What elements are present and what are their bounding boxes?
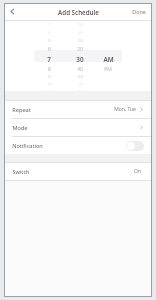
staticText: 40 (77, 66, 83, 73)
staticText: 30 (76, 55, 84, 64)
staticText: 3 (48, 22, 51, 28)
button[interactable]: Done (126, 3, 152, 20)
staticText: Mon, Tue (114, 106, 136, 113)
staticText: On (134, 168, 141, 175)
staticText: Add Schedule (58, 8, 99, 16)
staticText: 10 (78, 38, 83, 44)
staticText: 10 (78, 89, 83, 91)
staticText: 5 (48, 38, 51, 44)
staticText: 8 (48, 66, 51, 73)
staticText: 10 (47, 82, 52, 88)
staticText: Mode (12, 124, 28, 132)
button[interactable]: Back (4, 3, 21, 20)
staticText: Notification (12, 142, 43, 150)
staticText: 7 (47, 55, 51, 64)
button[interactable]: Notification toggle (126, 141, 144, 151)
button[interactable]: Switch (4, 163, 152, 180)
button[interactable]: Time picker column (69, 21, 91, 91)
staticText: PM (104, 66, 112, 73)
staticText: 50 (78, 22, 83, 28)
staticText: 6 (48, 46, 51, 53)
staticText: AM (103, 55, 114, 64)
button[interactable]: Repeat (4, 101, 152, 118)
button[interactable]: Notification (4, 137, 152, 154)
staticText: 9 (48, 74, 51, 80)
staticText: 20 (77, 46, 83, 53)
button[interactable]: Mode (4, 119, 152, 136)
staticText: Done (132, 8, 146, 15)
button[interactable]: Time picker column (98, 21, 118, 91)
staticText: 00 (78, 30, 83, 36)
staticText: 11 (47, 89, 52, 91)
staticText: 4 (48, 30, 51, 36)
staticText: 00 (78, 82, 83, 88)
button[interactable]: Time picker column (38, 21, 60, 91)
staticText: 50 (78, 74, 83, 80)
staticText: Switch (12, 168, 30, 176)
staticText: Repeat (12, 106, 31, 114)
